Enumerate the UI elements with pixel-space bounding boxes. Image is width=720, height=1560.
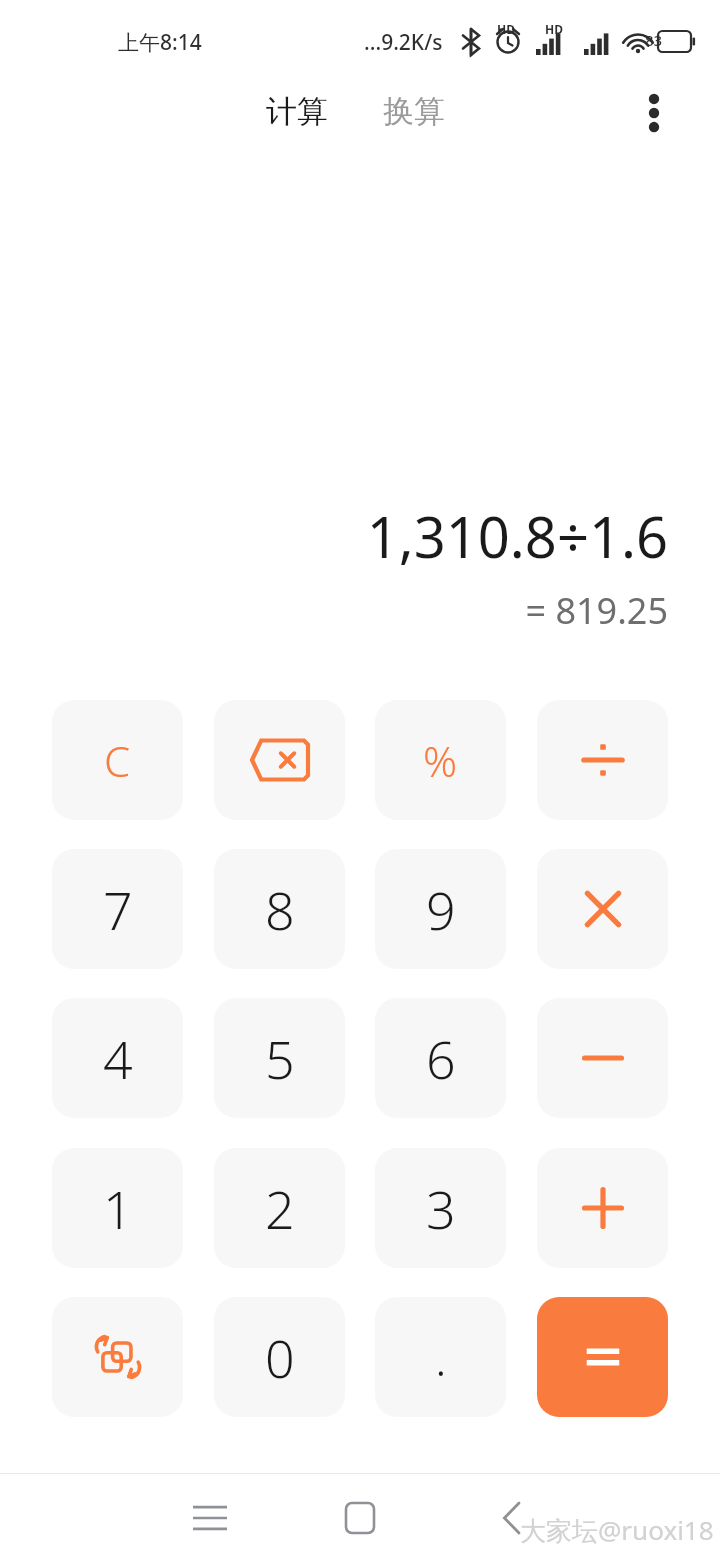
- staticText: 计算: [266, 92, 328, 131]
- staticText: 2: [265, 1173, 295, 1244]
- button[interactable]: .: [375, 1297, 506, 1417]
- staticText: 7: [103, 874, 133, 945]
- staticText: 4: [103, 1023, 133, 1094]
- staticText: 9: [426, 874, 456, 945]
- staticText: .: [435, 1325, 447, 1390]
- button[interactable]: Clear: [52, 700, 183, 820]
- button[interactable]: 5: [214, 998, 345, 1118]
- staticText: ...9.2K/s: [364, 28, 443, 57]
- button[interactable]: 6: [375, 998, 506, 1118]
- staticText: 大家坛@ruoxi18: [520, 1512, 714, 1548]
- button[interactable]: 0: [214, 1297, 345, 1417]
- staticText: C: [104, 732, 131, 789]
- button[interactable]: 2: [214, 1148, 345, 1268]
- button[interactable]: Back: [462, 1478, 562, 1558]
- button[interactable]: 计算: [250, 86, 344, 137]
- button[interactable]: Convert: [52, 1297, 183, 1417]
- staticText: 换算: [383, 92, 445, 131]
- staticText: HD: [497, 21, 515, 37]
- button[interactable]: 4: [52, 998, 183, 1118]
- button[interactable]: 换算: [367, 86, 461, 137]
- button[interactable]: 8: [214, 849, 345, 969]
- staticText: 0: [265, 1322, 295, 1393]
- button[interactable]: Divide: [537, 700, 668, 820]
- staticText: 上午8:14: [118, 28, 202, 57]
- button[interactable]: 3: [375, 1148, 506, 1268]
- staticText: 5: [265, 1023, 295, 1094]
- button[interactable]: Equals: [537, 1297, 668, 1417]
- staticText: HD: [545, 21, 563, 37]
- staticText: 1: [103, 1173, 133, 1244]
- button[interactable]: 1: [52, 1148, 183, 1268]
- button[interactable]: More options: [626, 78, 682, 148]
- button[interactable]: Multiply: [537, 849, 668, 969]
- button[interactable]: Plus: [537, 1148, 668, 1268]
- staticText: 3: [426, 1173, 456, 1244]
- button[interactable]: Percent: [375, 700, 506, 820]
- button[interactable]: Home: [310, 1478, 410, 1558]
- button[interactable]: 7: [52, 849, 183, 969]
- button[interactable]: 9: [375, 849, 506, 969]
- staticText: = 819.25: [525, 586, 668, 635]
- staticText: 8: [265, 874, 295, 945]
- staticText: 1,310.8÷1.6: [366, 498, 668, 574]
- button[interactable]: Backspace: [214, 700, 345, 820]
- staticText: %: [423, 732, 458, 789]
- staticText: 6: [426, 1023, 456, 1094]
- staticText: 83: [645, 30, 663, 50]
- button[interactable]: Recent apps: [160, 1478, 260, 1558]
- button[interactable]: Minus: [537, 998, 668, 1118]
